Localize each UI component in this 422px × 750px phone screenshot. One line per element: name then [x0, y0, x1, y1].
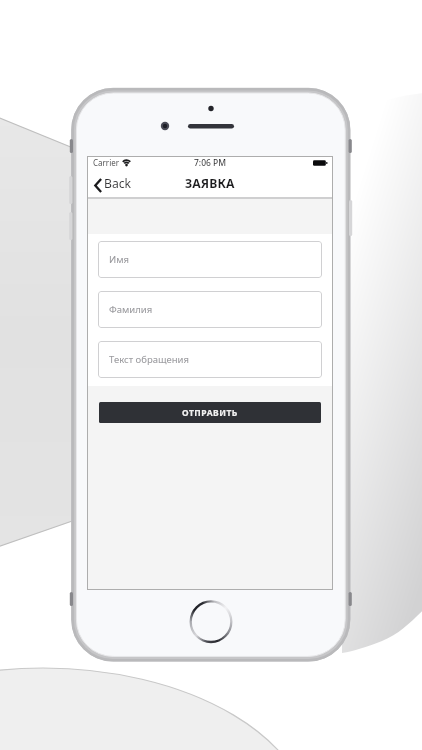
staticText: Back [104, 175, 132, 192]
staticText: ОТПРАВИТЬ [182, 407, 238, 419]
staticText: 7:06 PM [194, 157, 227, 168]
other: Back [94, 178, 102, 193]
button[interactable]: Фамилия [98, 291, 322, 328]
staticText: Текст обращения [109, 353, 189, 366]
button[interactable]: Имя [98, 241, 322, 278]
staticText: Carrier [93, 157, 120, 168]
button[interactable]: Back [88, 170, 140, 196]
staticText: Фамилия [109, 303, 153, 316]
button[interactable]: Текст обращения [98, 341, 322, 378]
button[interactable]: ОТПРАВИТЬ [99, 402, 321, 423]
staticText: Имя [109, 253, 129, 266]
staticText: ЗАЯВКА [185, 175, 235, 192]
